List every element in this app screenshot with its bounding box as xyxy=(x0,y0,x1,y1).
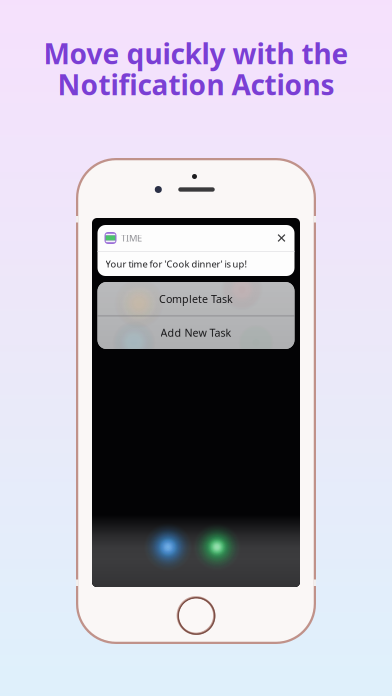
staticText: TIME xyxy=(121,232,142,244)
button[interactable]: Add New Task xyxy=(97,316,294,349)
button[interactable]: Complete Task xyxy=(97,282,294,315)
staticText: Add New Task xyxy=(160,326,231,340)
staticText: Complete Task xyxy=(159,292,233,306)
staticText: Your time for 'Cook dinner' is up! xyxy=(105,258,247,270)
button[interactable]: Close notification xyxy=(273,230,289,246)
staticText: Move quickly with the xyxy=(43,35,348,72)
staticText: Notification Actions xyxy=(57,66,334,103)
